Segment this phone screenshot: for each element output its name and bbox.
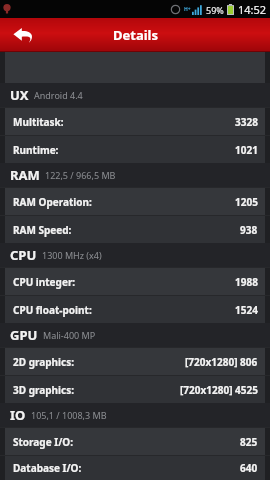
button[interactable]: Storage I/O: bbox=[5, 428, 265, 455]
staticText: RAM bbox=[10, 166, 40, 184]
staticText: 59% bbox=[206, 4, 224, 16]
button[interactable]: 3D graphics: bbox=[5, 376, 265, 403]
staticText: 1988 bbox=[235, 275, 258, 289]
staticText: Runtime: bbox=[13, 143, 59, 157]
staticText: Mali-400 MP bbox=[43, 329, 96, 341]
staticText: Details bbox=[113, 26, 158, 44]
button[interactable]: Back bbox=[0, 18, 46, 52]
staticText: RAM Speed: bbox=[13, 223, 72, 237]
button[interactable]: CPU float-point: bbox=[5, 296, 265, 323]
staticText: [720x1280] 806 bbox=[185, 355, 258, 369]
staticText: 105,1 / 1008,3 MB bbox=[31, 409, 107, 421]
staticText: 1205 bbox=[235, 195, 258, 209]
staticText: H+ bbox=[184, 6, 191, 13]
staticText: Multitask: bbox=[13, 115, 64, 129]
button[interactable]: Runtime: bbox=[5, 136, 265, 163]
button[interactable]: Multitask: bbox=[5, 108, 265, 135]
button[interactable]: Database I/O: bbox=[5, 456, 265, 480]
staticText: IO bbox=[10, 406, 26, 424]
staticText: 1524 bbox=[235, 303, 258, 317]
staticText: [720x1280] 4525 bbox=[180, 383, 258, 397]
staticText: 825 bbox=[240, 435, 258, 449]
staticText: 2D graphics: bbox=[13, 355, 75, 369]
staticText: Android 4.4 bbox=[34, 89, 83, 101]
staticText: CPU float-point: bbox=[13, 303, 92, 317]
button[interactable]: 2D graphics: bbox=[5, 348, 265, 375]
staticText: 3D graphics: bbox=[13, 383, 75, 397]
staticText: Database I/O: bbox=[13, 461, 82, 475]
button[interactable]: RAM Speed: bbox=[5, 216, 265, 243]
staticText: 938 bbox=[240, 223, 258, 237]
staticText: 122,5 / 966,5 MB bbox=[45, 169, 116, 181]
staticText: GPU bbox=[10, 326, 38, 344]
staticText: 1300 MHz (x4) bbox=[42, 249, 102, 261]
staticText: 3328 bbox=[235, 115, 258, 129]
staticText: RAM Operation: bbox=[13, 195, 92, 209]
staticText: UX bbox=[10, 86, 29, 104]
button[interactable]: CPU integer: bbox=[5, 268, 265, 295]
staticText: Storage I/O: bbox=[13, 435, 74, 449]
button[interactable]: RAM Operation: bbox=[5, 188, 265, 215]
staticText: CPU bbox=[10, 246, 37, 264]
staticText: 14:52 bbox=[238, 2, 267, 17]
staticText: 1021 bbox=[235, 143, 258, 157]
staticText: CPU integer: bbox=[13, 275, 76, 289]
staticText: 640 bbox=[240, 461, 258, 475]
